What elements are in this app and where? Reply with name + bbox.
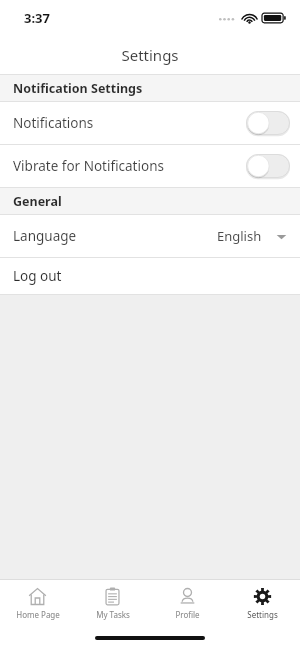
staticText: Log out (13, 267, 62, 285)
button[interactable]: Log out (0, 258, 300, 294)
button[interactable]: Settings (225, 580, 300, 626)
staticText: Home Page (16, 609, 60, 620)
staticText: Settings (121, 45, 179, 65)
staticText: Notification Settings (13, 80, 143, 97)
staticText: Language (13, 227, 77, 245)
staticText: Profile (175, 609, 200, 620)
staticText: My Tasks (96, 609, 130, 620)
button[interactable]: Toggle (246, 110, 290, 136)
staticText: Settings (247, 609, 278, 620)
staticText: Notifications (13, 114, 94, 132)
button[interactable]: Toggle (246, 153, 290, 179)
button[interactable]: Vibrate for Notifications (0, 145, 300, 187)
button[interactable]: Home Page (0, 580, 75, 626)
button[interactable]: My Tasks (75, 580, 150, 626)
staticText: Vibrate for Notifications (13, 157, 164, 175)
staticText: General (13, 193, 62, 210)
staticText: 3:37 (24, 9, 50, 27)
button[interactable]: Language (0, 215, 300, 257)
button[interactable]: Profile (150, 580, 225, 626)
button[interactable]: Notifications (0, 102, 300, 144)
staticText: English (217, 227, 262, 245)
